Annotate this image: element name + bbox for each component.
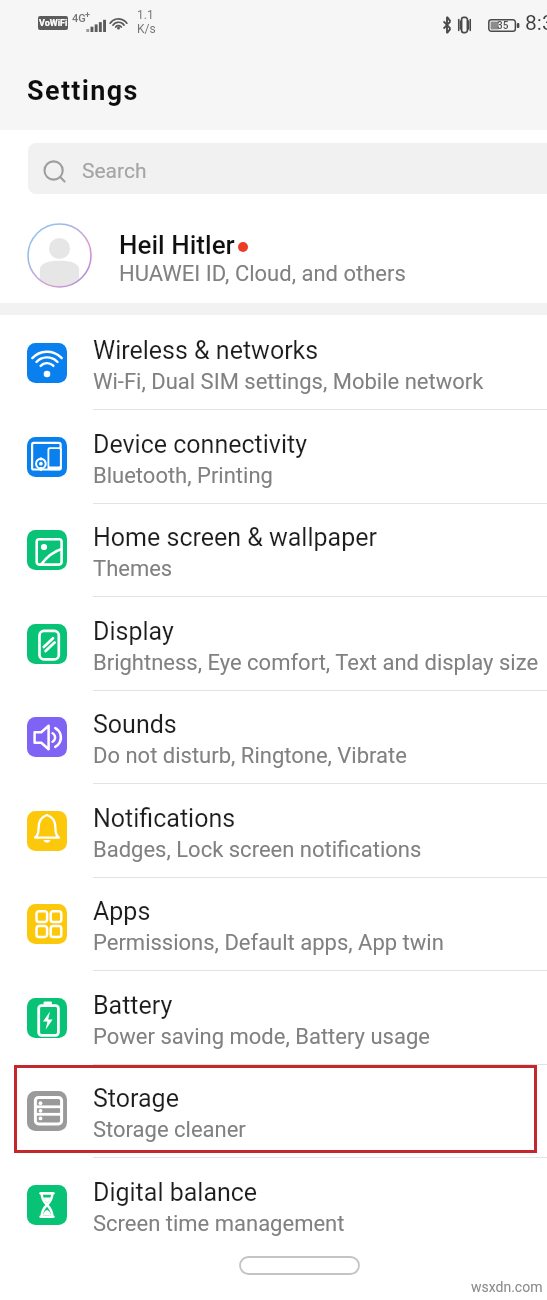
- staticText: Heil Hitler: [119, 230, 235, 260]
- button[interactable]: Wireless & networks: [0, 315, 547, 409]
- button[interactable]: Search: [28, 143, 547, 194]
- staticText: VoWiFi: [39, 18, 68, 29]
- staticText: Themes: [93, 556, 173, 582]
- staticText: Screen time management: [93, 1211, 345, 1237]
- staticText: Permissions, Default apps, App twin: [93, 930, 444, 956]
- staticText: Wi-Fi, Dual SIM settings, Mobile network: [93, 369, 484, 395]
- staticText: wsxdn.com: [471, 1279, 543, 1295]
- button[interactable]: Display: [0, 596, 547, 690]
- staticText: HUAWEI ID, Cloud, and others: [119, 261, 406, 287]
- staticText: Apps: [93, 897, 151, 926]
- staticText: 8:3: [525, 11, 547, 36]
- button[interactable]: Digital balance: [0, 1157, 547, 1251]
- staticText: Power saving mode, Battery usage: [93, 1024, 430, 1050]
- staticText: Battery: [93, 991, 173, 1020]
- button[interactable]: Home screen & wallpaper: [0, 502, 547, 596]
- staticText: K/s: [137, 22, 156, 36]
- staticText: Badges, Lock screen notifications: [93, 837, 422, 863]
- staticText: 35: [497, 20, 509, 32]
- button[interactable]: Notifications: [0, 783, 547, 877]
- staticText: Settings: [27, 75, 139, 107]
- button[interactable]: Battery: [0, 970, 547, 1064]
- staticText: 4G: [72, 12, 86, 25]
- staticText: Wireless & networks: [93, 336, 319, 365]
- staticText: Digital balance: [93, 1178, 258, 1207]
- staticText: Display: [93, 617, 174, 646]
- button[interactable]: Heil Hitler: [0, 205, 547, 303]
- staticText: +: [85, 10, 91, 21]
- button[interactable]: Sounds: [0, 689, 547, 783]
- staticText: Storage cleaner: [93, 1117, 246, 1143]
- button[interactable]: Device connectivity: [0, 409, 547, 503]
- staticText: Search: [82, 159, 147, 184]
- staticText: Storage: [93, 1084, 179, 1113]
- staticText: Home screen & wallpaper: [93, 523, 377, 552]
- button[interactable]: Apps: [0, 876, 547, 970]
- staticText: Bluetooth, Printing: [93, 463, 273, 489]
- staticText: 1.1: [137, 8, 154, 22]
- button[interactable]: Storage: [0, 1063, 547, 1157]
- staticText: Do not disturb, Ringtone, Vibrate: [93, 743, 407, 769]
- staticText: Notifications: [93, 804, 236, 833]
- staticText: Sounds: [93, 710, 177, 739]
- staticText: Device connectivity: [93, 430, 307, 459]
- staticText: Brightness, Eye comfort, Text and displa…: [93, 650, 539, 676]
